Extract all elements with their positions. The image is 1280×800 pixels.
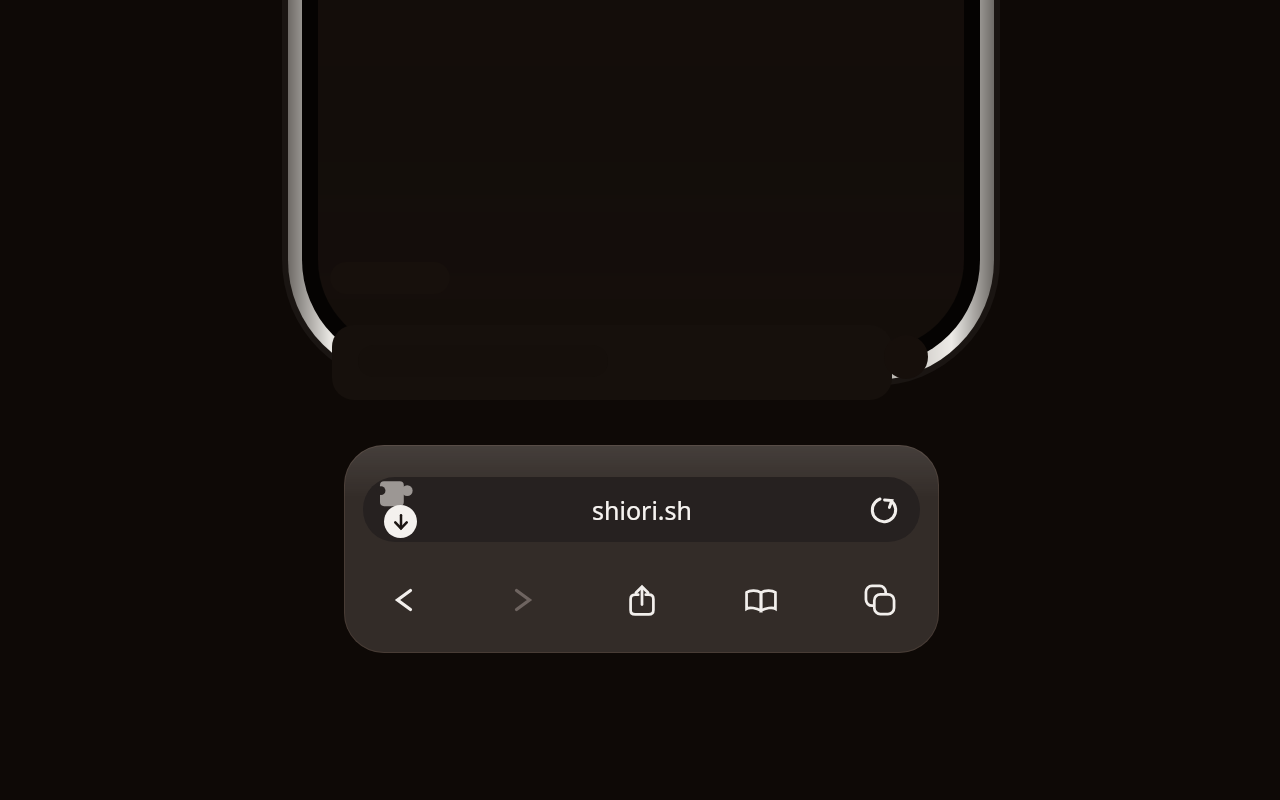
button[interactable]: Reload page: [862, 488, 906, 532]
button[interactable]: Bookmarks: [701, 565, 820, 635]
button[interactable]: Downloads: [384, 505, 417, 538]
button[interactable]: Back: [344, 565, 463, 635]
staticText: shiori.sh: [592, 493, 692, 527]
button[interactable]: shiori.sh: [363, 477, 920, 542]
button[interactable]: Extensions: [380, 478, 414, 510]
button[interactable]: Forward: [463, 565, 582, 635]
button[interactable]: Share: [582, 565, 701, 635]
button[interactable]: Tabs: [820, 565, 939, 635]
